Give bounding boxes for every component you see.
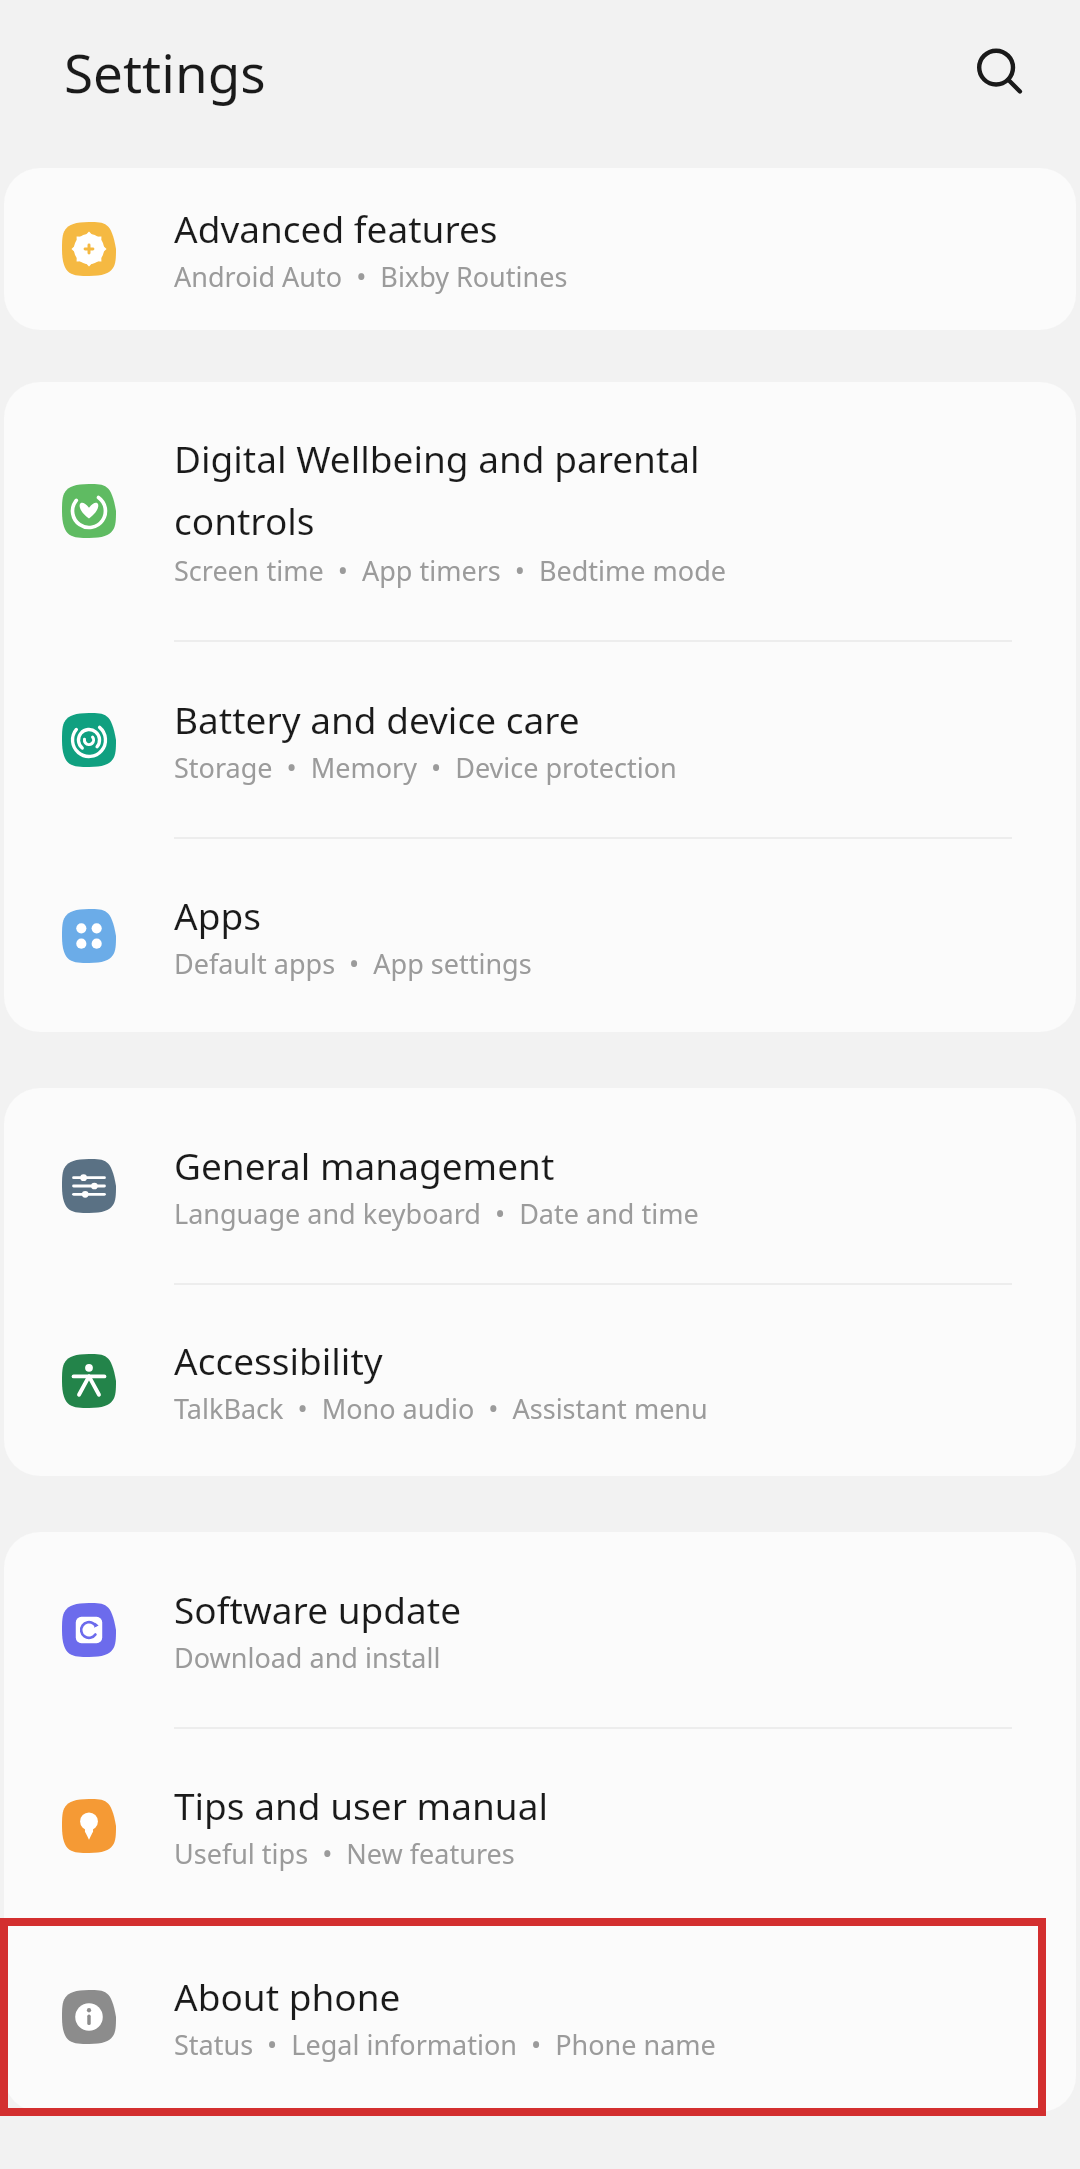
staticText: Screen time • App timers • Bedtime mode	[174, 552, 726, 589]
staticText: TalkBack • Mono audio • Assistant menu	[174, 1390, 708, 1427]
button[interactable]: General management	[4, 1088, 1076, 1283]
button[interactable]: About phone	[4, 1922, 1076, 2112]
button[interactable]: Search settings	[952, 24, 1048, 120]
staticText: Status • Legal information • Phone name	[174, 2026, 716, 2063]
staticText: Default apps • App settings	[174, 945, 532, 982]
staticText: Software update	[174, 1584, 462, 1634]
button[interactable]: Digital Wellbeing and parental controls	[4, 382, 1076, 640]
staticText: Storage • Memory • Device protection	[174, 749, 677, 786]
staticText: General management	[174, 1140, 555, 1190]
staticText: Useful tips • New features	[174, 1835, 515, 1872]
staticText: Android Auto • Bixby Routines	[174, 258, 568, 295]
button[interactable]: Accessibility	[4, 1285, 1076, 1476]
staticText: Advanced features	[174, 203, 498, 253]
staticText: Language and keyboard • Date and time	[174, 1195, 699, 1232]
staticText: About phone	[174, 1971, 401, 2021]
staticText: Settings	[64, 36, 266, 108]
button[interactable]: Advanced features	[4, 168, 1076, 330]
button[interactable]: Battery and device care	[4, 642, 1076, 837]
button[interactable]: Tips and user manual	[4, 1729, 1076, 1922]
staticText: Accessibility	[174, 1335, 383, 1385]
staticText: Download and install	[174, 1639, 441, 1676]
staticText: Apps	[174, 890, 261, 940]
staticText: Tips and user manual	[174, 1780, 548, 1830]
button[interactable]: Software update	[4, 1532, 1076, 1727]
staticText: Digital Wellbeing and parental controls	[174, 433, 700, 546]
staticText: Battery and device care	[174, 694, 580, 744]
button[interactable]: Apps	[4, 839, 1076, 1032]
